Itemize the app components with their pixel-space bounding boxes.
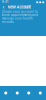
staticText: New Account <box>7 5 30 9</box>
button[interactable]: More <box>34 86 46 100</box>
staticText: 9:41 <box>2 0 8 4</box>
button[interactable]: Home <box>0 86 11 100</box>
staticText: Create your account to book appointments… <box>2 10 38 24</box>
button[interactable]: Back <box>1 4 5 9</box>
button[interactable]: Profile <box>23 86 34 100</box>
button[interactable]: Search <box>11 86 23 100</box>
staticText: ‹ <box>2 4 4 10</box>
staticText: ◼ ◼ ◼ <box>36 0 44 3</box>
